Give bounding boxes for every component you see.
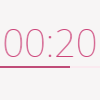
other: Timer progress 70 percent bbox=[0, 66, 100, 68]
staticText: 00:20 bbox=[0, 16, 100, 68]
staticText: 00:20 bbox=[0, 16, 100, 68]
staticText: 00:20 bbox=[0, 16, 100, 68]
button[interactable]: Timer 00:20, pause bbox=[0, 0, 100, 64]
staticText: 00:20 bbox=[0, 16, 99, 68]
